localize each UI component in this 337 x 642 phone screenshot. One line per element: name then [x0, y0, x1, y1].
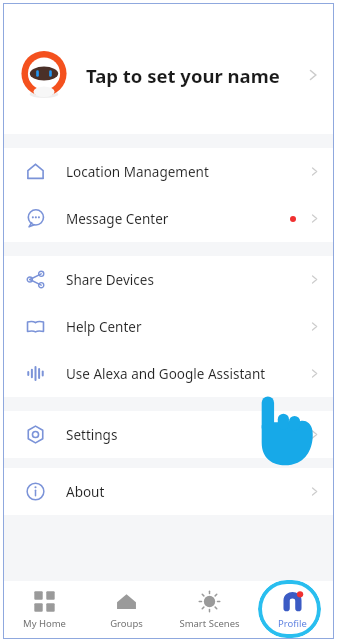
- button[interactable]: Location Management: [3, 148, 334, 195]
- button[interactable]: Share Devices: [3, 256, 334, 303]
- staticText: Message Center: [66, 210, 290, 228]
- other: Smart Scenes: [199, 591, 220, 612]
- button[interactable]: Message Center: [3, 195, 334, 242]
- staticText: Help Center: [66, 318, 309, 336]
- other: Profile: [282, 591, 303, 612]
- staticText: Tap to set your name: [86, 63, 306, 88]
- button[interactable]: Smart Scenes: [168, 581, 251, 639]
- button[interactable]: My Home: [3, 581, 85, 639]
- staticText: Profile: [278, 617, 307, 630]
- staticText: Groups: [110, 617, 143, 630]
- staticText: Location Management: [66, 163, 309, 181]
- staticText: Smart Scenes: [179, 617, 240, 630]
- staticText: About: [66, 483, 309, 501]
- button[interactable]: Settings: [3, 411, 334, 458]
- staticText: My Home: [23, 617, 66, 630]
- staticText: Use Alexa and Google Assistant: [66, 365, 309, 383]
- button[interactable]: Help Center: [3, 303, 334, 350]
- button[interactable]: Groups: [85, 581, 168, 639]
- button[interactable]: Profile: [251, 581, 334, 639]
- other: My Home: [34, 591, 55, 612]
- staticText: Share Devices: [66, 271, 309, 289]
- other: Groups: [116, 591, 137, 612]
- button[interactable]: Tap to set your name: [3, 3, 334, 134]
- button[interactable]: Use Alexa and Google Assistant: [3, 350, 334, 397]
- button[interactable]: About: [3, 468, 334, 515]
- staticText: Settings: [66, 426, 309, 444]
